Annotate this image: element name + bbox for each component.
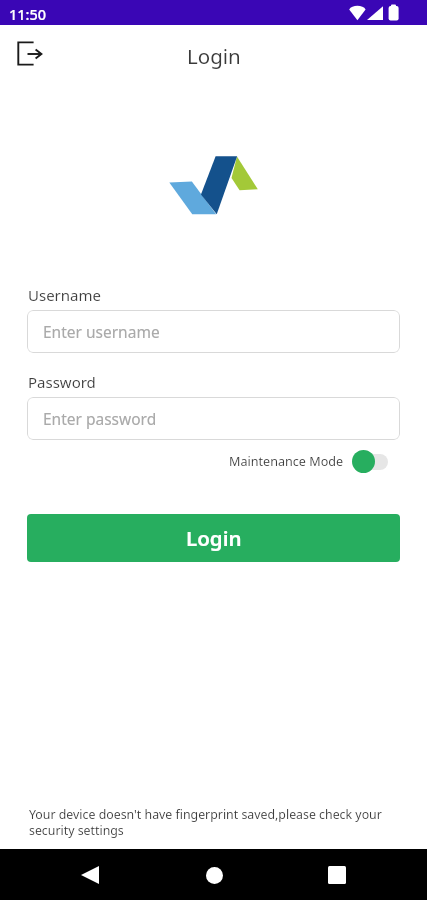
button[interactable]: Login [27, 514, 400, 562]
staticText: Username [28, 285, 101, 305]
button[interactable]: Maintenance Mode toggle [352, 450, 388, 473]
button[interactable]: Enter password [27, 397, 400, 440]
staticText: Maintenance Mode [229, 453, 344, 470]
button[interactable]: Enter username [27, 310, 400, 353]
staticText: Your device doesn't have fingerprint sav… [29, 806, 385, 839]
staticText: Login [187, 42, 241, 70]
staticText: 11:50 [9, 4, 47, 24]
button[interactable]: Home [196, 857, 232, 893]
staticText: Enter password [43, 408, 157, 429]
staticText: Login [186, 524, 242, 552]
button[interactable]: Recent apps [319, 857, 355, 893]
staticText: Enter username [43, 321, 160, 342]
staticText: Password [28, 372, 96, 392]
button[interactable]: Logout [7, 31, 51, 75]
button[interactable]: Back [72, 857, 108, 893]
